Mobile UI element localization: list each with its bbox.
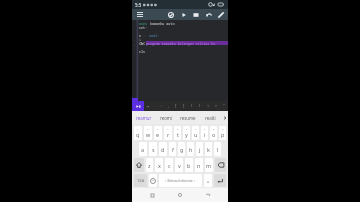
staticText: n	[197, 162, 201, 169]
button[interactable]: l	[214, 142, 221, 156]
button[interactable]: 3	[154, 126, 162, 140]
staticText: 8	[204, 127, 206, 130]
staticText: 2	[134, 26, 136, 29]
button[interactable]: More suggestions	[221, 111, 228, 124]
staticText: >	[215, 103, 218, 109]
button[interactable]: →	[144, 101, 151, 111]
staticText: reomi	[160, 115, 173, 121]
staticText: h	[189, 146, 193, 153]
button[interactable]: v	[175, 158, 183, 172]
staticText: 7	[134, 46, 136, 49]
button[interactable]: reomi	[155, 111, 177, 124]
button[interactable]: Stop	[190, 9, 201, 20]
button[interactable]: Shift	[134, 158, 144, 172]
button[interactable]: k	[205, 142, 212, 156]
staticText: :	[161, 103, 163, 109]
button[interactable]: "	[220, 101, 228, 111]
button[interactable]: 1	[134, 126, 142, 140]
staticText: 8	[134, 50, 136, 53]
button[interactable]: Home	[172, 188, 188, 202]
button[interactable]: <	[204, 101, 212, 111]
staticText: r	[167, 131, 170, 138]
button[interactable]: 4	[164, 126, 172, 140]
button[interactable]: 6	[183, 126, 190, 140]
staticText: c	[168, 162, 171, 169]
button[interactable]: Tab	[132, 101, 144, 111]
staticText: resume	[180, 115, 196, 121]
staticText: r	[139, 33, 144, 37]
button[interactable]: 12#	[134, 174, 147, 187]
button[interactable]: resume	[177, 111, 199, 124]
button[interactable]: 0	[219, 126, 226, 140]
staticText: kawanku_auto	[150, 21, 175, 25]
button[interactable]: 7	[192, 126, 199, 140]
button[interactable]: x	[155, 158, 163, 172]
staticText: reamur	[136, 115, 152, 121]
staticText: .	[154, 103, 156, 109]
button[interactable]: >	[212, 101, 220, 111]
button[interactable]: (	[188, 101, 196, 111]
button[interactable]: Run	[178, 9, 189, 20]
button[interactable]: 8	[201, 126, 208, 140]
staticText: o	[212, 131, 216, 138]
button[interactable]: ]	[180, 101, 188, 111]
staticText: ]	[183, 103, 185, 109]
button[interactable]: :	[158, 101, 165, 111]
staticText: ,	[168, 103, 170, 109]
button[interactable]: z	[146, 158, 153, 172]
staticText: y	[185, 131, 188, 138]
button[interactable]: ,	[165, 101, 172, 111]
staticText: 3	[134, 30, 136, 33]
staticText: 0	[222, 127, 224, 130]
button[interactable]: j	[196, 142, 203, 156]
staticText: 4	[167, 127, 169, 130]
staticText: l	[217, 146, 219, 153]
button[interactable]: b	[185, 158, 193, 172]
staticText: :	[144, 33, 149, 37]
button[interactable]: Back	[200, 188, 216, 202]
button[interactable]: h	[187, 142, 194, 156]
button[interactable]: Enter	[214, 174, 226, 187]
button[interactable]: )	[196, 101, 204, 111]
button[interactable]: Undo	[203, 9, 214, 20]
staticText: 3	[157, 127, 159, 130]
button[interactable]: d	[159, 142, 167, 156]
staticText: 12#	[137, 178, 145, 183]
staticText: cls	[139, 49, 146, 53]
button[interactable]: realti	[199, 111, 221, 124]
button[interactable]: s	[149, 142, 157, 156]
button[interactable]: Backspace	[215, 158, 226, 172]
button[interactable]: g	[178, 142, 185, 156]
button[interactable]: 5	[174, 126, 181, 140]
staticText: 5	[177, 127, 179, 130]
button[interactable]: a	[139, 142, 147, 156]
staticText: uses	[139, 21, 150, 25]
button[interactable]: [	[172, 101, 180, 111]
button[interactable]: Period	[204, 174, 212, 187]
button[interactable]: reamur	[132, 111, 155, 124]
button[interactable]: c	[165, 158, 173, 172]
button[interactable]: Recents	[144, 188, 160, 202]
staticText: )	[199, 103, 201, 109]
button[interactable]: Edit	[215, 9, 226, 20]
button[interactable]: f	[169, 142, 176, 156]
staticText: realti	[205, 115, 216, 121]
button[interactable]: n	[195, 158, 203, 172]
staticText: 1	[137, 127, 139, 130]
staticText: 1	[134, 22, 136, 25]
button[interactable]: Space	[159, 174, 202, 187]
staticText: 7	[195, 127, 197, 130]
button[interactable]: 9	[210, 126, 217, 140]
button[interactable]: Save	[165, 9, 176, 20]
button[interactable]: Menu	[134, 9, 146, 20]
staticText: <	[207, 103, 210, 109]
button[interactable]: Emoji	[149, 174, 157, 187]
staticText: x	[158, 162, 161, 169]
button[interactable]: m	[205, 158, 213, 172]
staticText: "	[223, 103, 225, 109]
staticText: [	[175, 103, 177, 109]
staticText: 4	[134, 34, 136, 37]
staticText: s	[152, 146, 155, 153]
button[interactable]: 2	[144, 126, 152, 140]
